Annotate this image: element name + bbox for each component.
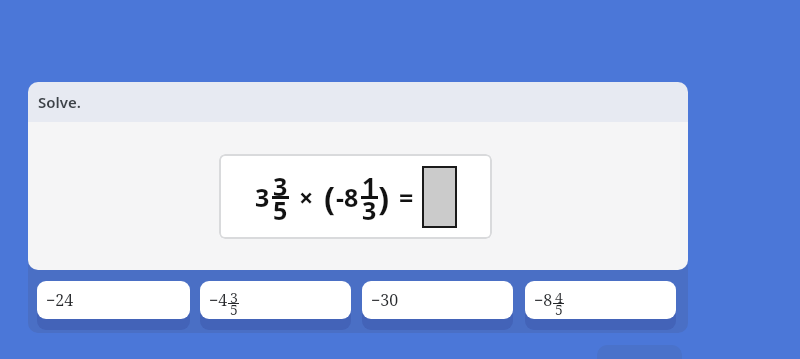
staticText: −4 bbox=[209, 289, 228, 311]
staticText: 4 bbox=[555, 288, 563, 307]
staticText: −8 bbox=[534, 289, 553, 311]
button[interactable]: −4 bbox=[200, 281, 351, 319]
staticText: ) bbox=[378, 175, 390, 220]
staticText: Solve. bbox=[38, 92, 81, 112]
staticText: 5 bbox=[555, 300, 563, 319]
staticText: ( bbox=[324, 175, 336, 220]
button[interactable]: −24 bbox=[37, 281, 190, 319]
staticText: 5 bbox=[230, 300, 238, 319]
staticText: 5 bbox=[273, 193, 288, 227]
staticText: -8 bbox=[336, 180, 359, 214]
staticText: −30 bbox=[371, 289, 399, 311]
staticText: × bbox=[299, 180, 314, 214]
staticText: −24 bbox=[46, 289, 74, 311]
button[interactable]: −30 bbox=[362, 281, 513, 319]
staticText: = bbox=[399, 180, 414, 214]
staticText: 3 bbox=[230, 288, 238, 307]
button[interactable] bbox=[422, 166, 457, 228]
staticText: 3 bbox=[362, 193, 377, 227]
staticText: 3 bbox=[255, 180, 270, 214]
staticText: 1 bbox=[362, 169, 377, 203]
staticText: 3 bbox=[273, 169, 288, 203]
button[interactable]: −8 bbox=[525, 281, 676, 319]
